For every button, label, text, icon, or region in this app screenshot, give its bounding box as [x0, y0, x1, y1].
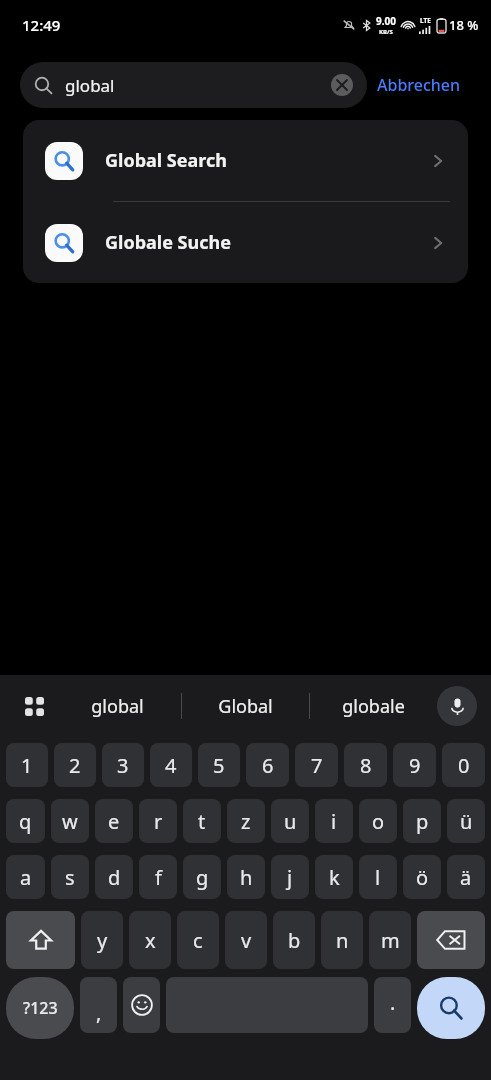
staticText: ö [416, 864, 429, 891]
button[interactable]: w [51, 799, 89, 843]
button[interactable]: b [273, 911, 315, 969]
button[interactable]: global [54, 675, 181, 737]
staticText: z [241, 808, 251, 835]
staticText: m [381, 927, 400, 954]
staticText: x [145, 927, 156, 954]
staticText: c [193, 927, 203, 954]
button[interactable]: ä [447, 855, 485, 899]
staticText: KB/S [379, 28, 393, 36]
staticText: e [108, 808, 120, 835]
staticText: global [65, 74, 331, 97]
button[interactable]: Backspace [417, 911, 485, 969]
staticText: f [155, 864, 162, 891]
button[interactable]: 5 [198, 743, 240, 787]
button[interactable]: Abbrechen [367, 66, 471, 104]
staticText: 4 [165, 752, 177, 779]
staticText: o [372, 808, 385, 835]
staticText: r [154, 808, 163, 835]
button[interactable]: Clear [331, 74, 353, 96]
staticText: 9.00 [376, 14, 396, 28]
staticText: h [240, 864, 253, 891]
button[interactable]: Global Search [23, 120, 468, 201]
staticText: a [20, 864, 32, 891]
button[interactable]: 0 [442, 743, 485, 787]
button[interactable]: 3 [102, 743, 144, 787]
staticText: Global [218, 694, 273, 719]
button[interactable]: v [225, 911, 267, 969]
button[interactable]: 4 [150, 743, 192, 787]
staticText: 0 [458, 752, 470, 779]
button[interactable]: globale [310, 675, 437, 737]
staticText: w [62, 808, 78, 835]
staticText: y [97, 927, 108, 954]
staticText: 6 [262, 752, 274, 779]
staticText: j [287, 864, 293, 891]
button[interactable]: d [95, 855, 133, 899]
staticText: 12:49 [22, 15, 61, 35]
button[interactable]: Globale Suche [23, 202, 468, 283]
staticText: global [91, 694, 144, 719]
button[interactable]: u [271, 799, 309, 843]
staticText: n [336, 927, 349, 954]
button[interactable]: ü [447, 799, 485, 843]
button[interactable]: 8 [344, 743, 387, 787]
staticText: q [19, 808, 32, 835]
button[interactable]: Search [417, 977, 485, 1039]
staticText: b [288, 927, 301, 954]
button[interactable]: 2 [54, 743, 96, 787]
button[interactable]: 7 [295, 743, 338, 787]
button[interactable]: global [20, 62, 367, 108]
button[interactable]: p [403, 799, 441, 843]
button[interactable]: e [95, 799, 133, 843]
button[interactable]: m [369, 911, 411, 969]
staticText: g [196, 864, 209, 891]
button[interactable]: 6 [246, 743, 289, 787]
button[interactable]: h [227, 855, 265, 899]
staticText: 8 [360, 752, 372, 779]
button[interactable]: Shift [6, 911, 75, 969]
button[interactable]: Global [182, 675, 309, 737]
staticText: Globale Suche [105, 230, 430, 255]
staticText: ?123 [23, 997, 58, 1019]
button[interactable]: s [51, 855, 89, 899]
staticText: 1 [21, 752, 33, 779]
button[interactable]: r [139, 799, 177, 843]
button[interactable]: , [80, 977, 117, 1033]
button[interactable]: ?123 [6, 977, 74, 1039]
button[interactable]: i [315, 799, 353, 843]
button[interactable]: Keyboard menu [14, 686, 54, 726]
button[interactable]: 1 [6, 743, 48, 787]
button[interactable]: q [6, 799, 45, 843]
button[interactable]: a [6, 855, 45, 899]
button[interactable]: ö [403, 855, 441, 899]
button[interactable]: x [129, 911, 171, 969]
button[interactable]: n [321, 911, 363, 969]
staticText: i [331, 808, 337, 835]
button[interactable]: t [183, 799, 221, 843]
button[interactable]: Voice input [437, 686, 477, 726]
button[interactable]: 9 [393, 743, 436, 787]
button[interactable]: f [139, 855, 177, 899]
staticText: 18 % [449, 16, 479, 34]
button[interactable]: Emoji [123, 977, 160, 1033]
button[interactable]: z [227, 799, 265, 843]
staticText: l [375, 864, 381, 891]
staticText: 7 [311, 752, 323, 779]
button[interactable]: . [374, 977, 411, 1033]
button[interactable]: g [183, 855, 221, 899]
staticText: k [329, 864, 340, 891]
staticText: d [108, 864, 121, 891]
staticText: v [241, 927, 252, 954]
staticText: Abbrechen [377, 74, 461, 96]
button[interactable]: j [271, 855, 309, 899]
staticText: ü [460, 808, 473, 835]
button[interactable]: k [315, 855, 353, 899]
button[interactable]: l [359, 855, 397, 899]
staticText: p [416, 808, 429, 835]
staticText: globale [342, 694, 405, 719]
staticText: LTE [420, 16, 431, 25]
button[interactable]: y [81, 911, 123, 969]
button[interactable]: c [177, 911, 219, 969]
button[interactable]: o [359, 799, 397, 843]
